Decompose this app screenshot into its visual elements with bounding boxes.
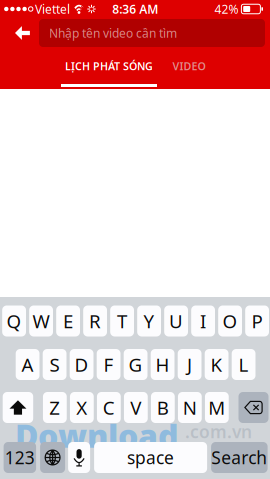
button[interactable]: VIDEO bbox=[169, 48, 209, 84]
staticText: W bbox=[33, 309, 50, 333]
button[interactable]: G bbox=[124, 349, 147, 380]
button[interactable]: R bbox=[83, 305, 107, 336]
staticText: Z bbox=[49, 395, 60, 420]
button[interactable]: Dictation bbox=[68, 442, 90, 473]
button[interactable]: F bbox=[97, 349, 120, 380]
button[interactable]: Shift bbox=[3, 392, 33, 423]
staticText: V bbox=[130, 395, 141, 420]
staticText: O bbox=[223, 309, 238, 333]
button[interactable]: Y bbox=[137, 305, 161, 336]
staticText: N bbox=[183, 395, 197, 420]
staticText: R bbox=[89, 309, 101, 333]
staticText: B bbox=[157, 395, 169, 420]
staticText: Search bbox=[211, 446, 267, 469]
staticText: 42% bbox=[214, 1, 238, 17]
button[interactable]: 123 bbox=[4, 442, 36, 473]
button[interactable]: B bbox=[151, 392, 175, 423]
button[interactable]: X bbox=[70, 392, 94, 423]
button[interactable]: P bbox=[245, 305, 269, 336]
staticText: I bbox=[200, 309, 206, 333]
button[interactable]: V bbox=[124, 392, 148, 423]
button[interactable]: U bbox=[164, 305, 188, 336]
button[interactable]: E bbox=[56, 305, 80, 336]
button[interactable]: Z bbox=[43, 392, 67, 423]
staticText: VIDEO bbox=[172, 59, 205, 73]
staticText: LỊCH PHÁT SÓNG bbox=[65, 59, 153, 73]
staticText: Q bbox=[7, 309, 22, 333]
staticText: J bbox=[187, 352, 192, 377]
button[interactable]: H bbox=[151, 349, 174, 380]
staticText: M bbox=[208, 395, 225, 420]
button[interactable]: D bbox=[70, 349, 93, 380]
button[interactable]: space bbox=[94, 442, 207, 473]
button[interactable]: Q bbox=[2, 305, 26, 336]
staticText: H bbox=[156, 352, 170, 377]
staticText: F bbox=[104, 352, 114, 377]
button[interactable]: L bbox=[232, 349, 255, 380]
staticText: space bbox=[127, 446, 174, 469]
staticText: K bbox=[211, 352, 223, 377]
staticText: 8:36 AM bbox=[112, 1, 158, 17]
staticText: A bbox=[22, 352, 34, 377]
button[interactable]: Nhập tên video cần tìm bbox=[39, 19, 265, 47]
button[interactable]: I bbox=[191, 305, 215, 336]
button[interactable]: W bbox=[29, 305, 53, 336]
button[interactable]: M bbox=[205, 392, 229, 423]
button[interactable]: Search bbox=[211, 442, 268, 473]
button[interactable]: J bbox=[178, 349, 201, 380]
staticText: .com.vn bbox=[185, 420, 252, 443]
staticText: Download bbox=[15, 414, 179, 456]
staticText: P bbox=[252, 309, 263, 333]
button[interactable]: K bbox=[205, 349, 228, 380]
button[interactable]: Next keyboard bbox=[40, 442, 65, 473]
staticText: S bbox=[50, 352, 60, 377]
button[interactable]: LỊCH PHÁT SÓNG bbox=[61, 48, 157, 89]
button[interactable]: O bbox=[218, 305, 242, 336]
staticText: T bbox=[117, 309, 127, 333]
button[interactable]: Back bbox=[6, 19, 39, 47]
staticText: Y bbox=[144, 309, 155, 333]
button[interactable]: S bbox=[43, 349, 66, 380]
staticText: E bbox=[63, 309, 73, 333]
staticText: L bbox=[239, 352, 249, 377]
button[interactable]: A bbox=[16, 349, 39, 380]
staticText: X bbox=[76, 395, 87, 420]
button[interactable]: C bbox=[97, 392, 121, 423]
staticText: U bbox=[169, 309, 183, 333]
staticText: G bbox=[129, 352, 143, 377]
button[interactable]: N bbox=[178, 392, 202, 423]
staticText: D bbox=[75, 352, 89, 377]
button[interactable]: Delete bbox=[238, 392, 268, 423]
staticText: Nhập tên video cần tìm bbox=[49, 25, 177, 41]
staticText: 123 bbox=[5, 446, 35, 469]
button[interactable]: T bbox=[110, 305, 134, 336]
staticText: Viettel bbox=[35, 1, 70, 17]
staticText: C bbox=[103, 395, 115, 420]
